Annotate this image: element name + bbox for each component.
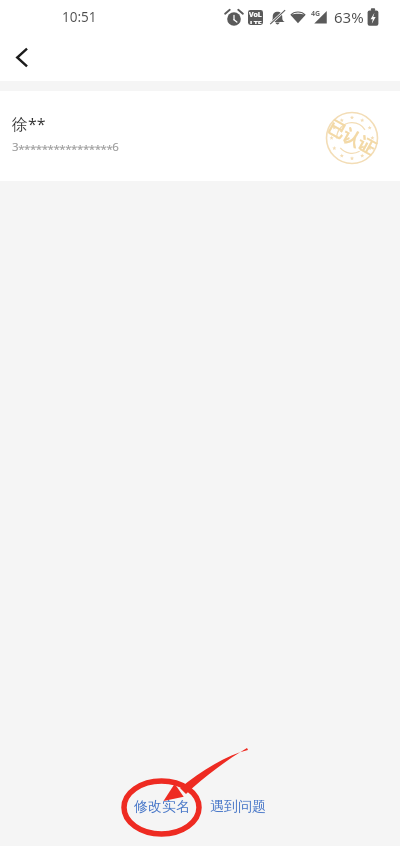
- button[interactable]: 修改实名: [130, 793, 194, 821]
- staticText: 63%: [334, 7, 364, 27]
- staticText: 修改实名: [134, 798, 190, 816]
- staticText: LTE: [250, 19, 262, 24]
- button[interactable]: Back: [4, 39, 42, 77]
- staticText: 遇到问题: [210, 798, 266, 816]
- staticText: 已认证: [324, 116, 379, 160]
- staticText: VoL: [249, 10, 262, 20]
- staticText: 4G: [311, 9, 321, 19]
- staticText: 徐**: [12, 113, 46, 135]
- staticText: 3****************6: [12, 139, 119, 157]
- staticText: 10:51: [62, 8, 97, 26]
- button[interactable]: 遇到问题: [206, 793, 270, 821]
